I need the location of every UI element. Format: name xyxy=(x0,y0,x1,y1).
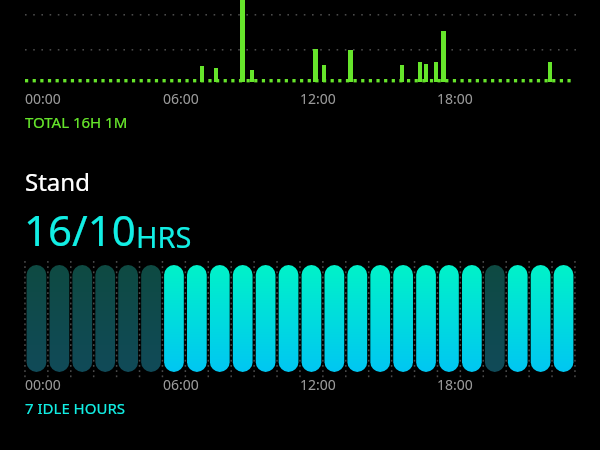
button[interactable]: 00:00 xyxy=(0,0,600,135)
staticText: 7 IDLE HOURS xyxy=(25,398,125,418)
staticText: HRS xyxy=(136,217,192,256)
staticText: 18:00 xyxy=(437,89,473,108)
staticText: 00:00 xyxy=(25,89,61,108)
button[interactable]: Stand hours chart xyxy=(0,258,600,383)
staticText: 16/10 xyxy=(24,201,136,258)
staticText: 12:00 xyxy=(300,375,336,394)
staticText: 06:00 xyxy=(163,89,199,108)
staticText: Stand xyxy=(25,165,90,198)
staticText: TOTAL 16H 1M xyxy=(25,112,128,132)
staticText: 18:00 xyxy=(437,375,473,394)
staticText: 00:00 xyxy=(25,375,61,394)
staticText: 06:00 xyxy=(163,375,199,394)
staticText: 12:00 xyxy=(300,89,336,108)
